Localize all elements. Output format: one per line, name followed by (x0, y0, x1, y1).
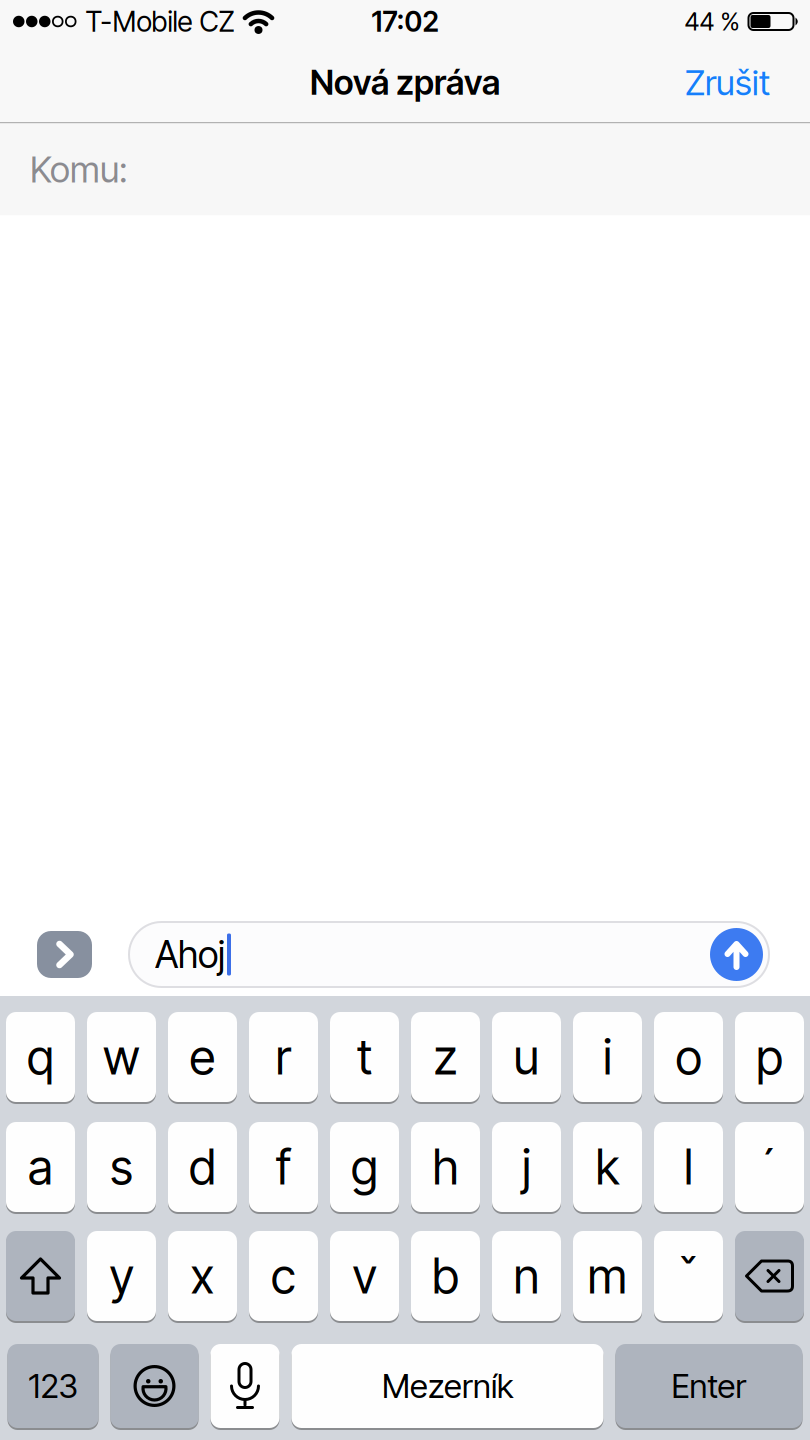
button[interactable]: k (573, 1122, 642, 1214)
staticText: n (513, 1247, 539, 1305)
staticText: ´ (760, 1138, 779, 1196)
staticText: T-Mobile CZ (85, 5, 234, 38)
staticText: g (351, 1138, 378, 1196)
staticText: Mezerník (382, 1366, 513, 1406)
button[interactable]: f (249, 1122, 318, 1214)
button[interactable]: Zrušit (685, 61, 770, 104)
button[interactable]: Mezerník (291, 1344, 603, 1430)
staticText: w (103, 1028, 140, 1086)
button[interactable]: ´ (735, 1122, 804, 1214)
staticText: Enter (671, 1366, 746, 1406)
staticText: u (513, 1028, 539, 1086)
button[interactable]: o (654, 1012, 723, 1104)
button[interactable] (6, 1231, 75, 1323)
button[interactable]: p (735, 1012, 804, 1104)
staticText: q (27, 1028, 54, 1086)
staticText: f (276, 1138, 291, 1196)
button[interactable]: n (492, 1231, 561, 1323)
button[interactable]: h (411, 1122, 480, 1214)
button[interactable]: ˇ (654, 1231, 723, 1323)
button[interactable]: a (6, 1122, 75, 1214)
button[interactable]: w (87, 1012, 156, 1104)
staticText: h (432, 1138, 458, 1196)
staticText: 17:02 (371, 5, 438, 38)
staticText: i (603, 1028, 612, 1086)
staticText: y (109, 1247, 133, 1305)
button[interactable]: r (249, 1012, 318, 1104)
button[interactable]: m (573, 1231, 642, 1323)
button[interactable]: d (168, 1122, 237, 1214)
staticText: m (587, 1247, 627, 1305)
button[interactable]: y (87, 1231, 156, 1323)
staticText: k (595, 1138, 619, 1196)
button[interactable]: x (168, 1231, 237, 1323)
button[interactable]: s (87, 1122, 156, 1214)
staticText: 123 (28, 1366, 77, 1406)
staticText: d (189, 1138, 216, 1196)
button[interactable]: z (411, 1012, 480, 1104)
button[interactable] (210, 1344, 279, 1430)
staticText: Zrušit (685, 61, 770, 104)
button[interactable] (710, 928, 763, 981)
staticText: p (756, 1028, 783, 1086)
button[interactable]: t (330, 1012, 399, 1104)
staticText: a (28, 1138, 53, 1196)
staticText: Ahoj (155, 932, 225, 977)
staticText: Komu: (30, 148, 128, 191)
button[interactable] (37, 931, 92, 978)
staticText: ˇ (678, 1247, 698, 1305)
staticText: 44 % (684, 6, 739, 37)
button[interactable]: l (654, 1122, 723, 1214)
staticText: t (357, 1028, 372, 1086)
button[interactable]: g (330, 1122, 399, 1214)
button[interactable]: e (168, 1012, 237, 1104)
staticText: b (432, 1247, 459, 1305)
button[interactable]: Enter (615, 1344, 802, 1430)
staticText: z (433, 1028, 457, 1086)
staticText: Nová zpráva (310, 62, 500, 103)
staticText: r (275, 1028, 291, 1086)
staticText: c (271, 1247, 296, 1305)
staticText: o (675, 1028, 701, 1086)
staticText: s (110, 1138, 133, 1196)
staticText: e (189, 1028, 215, 1086)
button[interactable]: u (492, 1012, 561, 1104)
button[interactable]: i (573, 1012, 642, 1104)
staticText: j (522, 1138, 531, 1196)
staticText: v (352, 1247, 376, 1305)
button[interactable]: c (249, 1231, 318, 1323)
button[interactable]: 123 (7, 1344, 98, 1430)
button[interactable] (735, 1231, 804, 1323)
button[interactable]: q (6, 1012, 75, 1104)
button[interactable]: Komu: (0, 123, 810, 215)
button[interactable]: j (492, 1122, 561, 1214)
button[interactable] (110, 1344, 198, 1430)
staticText: x (190, 1247, 214, 1305)
staticText: l (684, 1138, 693, 1196)
button[interactable]: b (411, 1231, 480, 1323)
button[interactable]: v (330, 1231, 399, 1323)
